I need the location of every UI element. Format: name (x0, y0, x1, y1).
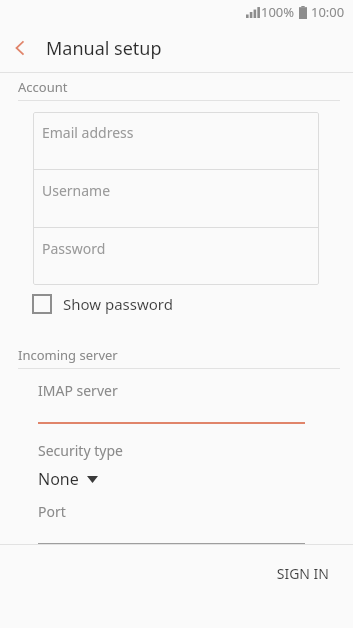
staticText: SIGN IN (276, 564, 329, 583)
staticText: Email address (42, 123, 134, 142)
button[interactable]: Security type (0, 424, 353, 490)
button[interactable]: Password (33, 228, 319, 285)
staticText: Incoming server (18, 346, 118, 364)
button[interactable]: Email address (33, 112, 319, 169)
staticText: IMAP server (38, 381, 118, 400)
button[interactable]: IMAP server (0, 369, 353, 424)
staticText: None (38, 468, 79, 490)
staticText: Manual setup (46, 36, 162, 61)
staticText: Account (18, 78, 68, 96)
staticText: Port (38, 502, 66, 521)
button[interactable]: Username (33, 170, 319, 227)
staticText: Password (42, 239, 106, 258)
button[interactable]: Port (0, 490, 353, 544)
button[interactable]: SIGN IN (252, 550, 353, 597)
staticText: 100% (261, 3, 295, 21)
staticText: Security type (38, 441, 123, 460)
button[interactable]: Show password (0, 285, 353, 323)
staticText: Username (42, 181, 111, 200)
staticText: Show password (63, 294, 173, 314)
button[interactable]: Navigate up (0, 28, 40, 68)
staticText: 10:00 (311, 3, 345, 21)
